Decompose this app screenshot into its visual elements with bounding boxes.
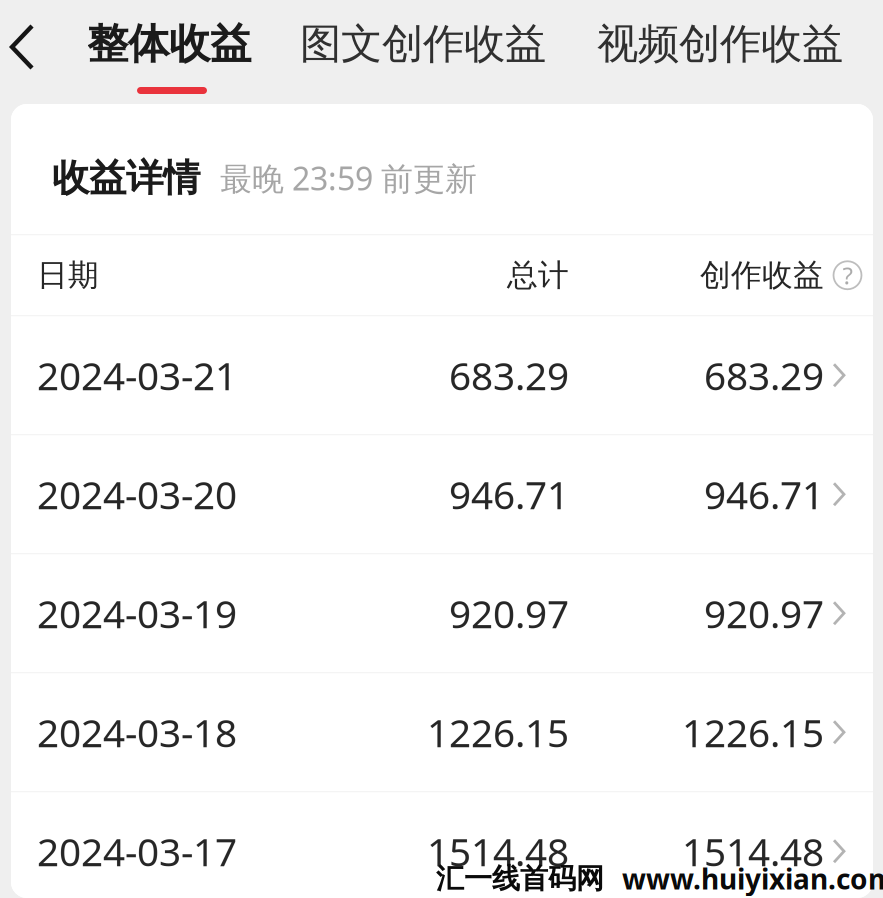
button[interactable]: 图文创作收益 — [276, 0, 570, 104]
staticText: 920.97 — [704, 588, 824, 639]
staticText: 1226.15 — [682, 707, 824, 758]
staticText: 2024-03-19 — [37, 588, 237, 639]
staticText: 收益详情 — [52, 155, 200, 201]
staticText: 683.29 — [704, 350, 824, 401]
button[interactable]: 2024-03-17 — [11, 792, 873, 898]
button[interactable]: 2024-03-21 — [11, 316, 873, 434]
staticText: 整体收益 — [87, 19, 251, 69]
staticText: 2024-03-17 — [37, 826, 237, 877]
button[interactable]: 2024-03-19 — [11, 554, 873, 672]
button[interactable]: Back — [0, 0, 62, 104]
button[interactable]: 2024-03-18 — [11, 673, 873, 791]
staticText: 2024-03-21 — [37, 350, 237, 401]
staticText: 创作收益 — [700, 256, 824, 294]
staticText: 最晚 23:59 前更新 — [220, 157, 477, 199]
staticText: 汇一线首码网 — [436, 861, 604, 896]
staticText: 2024-03-20 — [37, 469, 237, 520]
staticText: www.huiyixian.com — [622, 860, 883, 897]
staticText: 日期 — [37, 256, 99, 294]
button[interactable]: 视频创作收益 — [570, 0, 870, 104]
staticText: 1514.48 — [682, 826, 824, 877]
staticText: 920.97 — [449, 588, 569, 639]
staticText: 946.71 — [449, 469, 569, 520]
staticText: 视频创作收益 — [597, 19, 843, 69]
button[interactable]: 2024-03-20 — [11, 435, 873, 553]
staticText: 图文创作收益 — [300, 19, 546, 69]
staticText: 总计 — [507, 256, 569, 294]
staticText: 1514.48 — [427, 826, 569, 877]
staticText: 683.29 — [449, 350, 569, 401]
staticText: 1226.15 — [427, 707, 569, 758]
staticText: 946.71 — [704, 469, 824, 520]
button[interactable]: 整体收益 — [62, 0, 276, 104]
staticText: ? — [842, 259, 852, 291]
staticText: 2024-03-18 — [37, 707, 237, 758]
